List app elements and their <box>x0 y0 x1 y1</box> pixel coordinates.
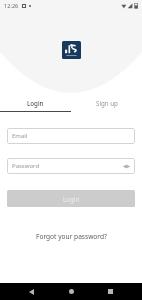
staticText: Email <box>12 132 28 140</box>
staticText: Login <box>27 99 44 107</box>
staticText: Login <box>63 195 80 203</box>
button[interactable]: Home <box>63 283 80 300</box>
button[interactable]: Recent apps <box>102 283 119 300</box>
button[interactable]: App logo <box>62 41 81 59</box>
button[interactable]: Sign up <box>71 97 142 108</box>
button[interactable]: Password <box>7 158 135 174</box>
button[interactable]: Back <box>23 283 40 300</box>
staticText: Password <box>12 162 40 170</box>
staticText: Sign up <box>96 99 118 107</box>
staticText: Forgot your password? <box>36 232 107 241</box>
button[interactable]: Email <box>7 128 135 144</box>
button[interactable]: Show password <box>122 162 131 171</box>
button[interactable]: Login <box>0 97 71 108</box>
staticText: 12:26 <box>4 2 19 10</box>
button[interactable]: Forgot your password? <box>32 230 111 243</box>
